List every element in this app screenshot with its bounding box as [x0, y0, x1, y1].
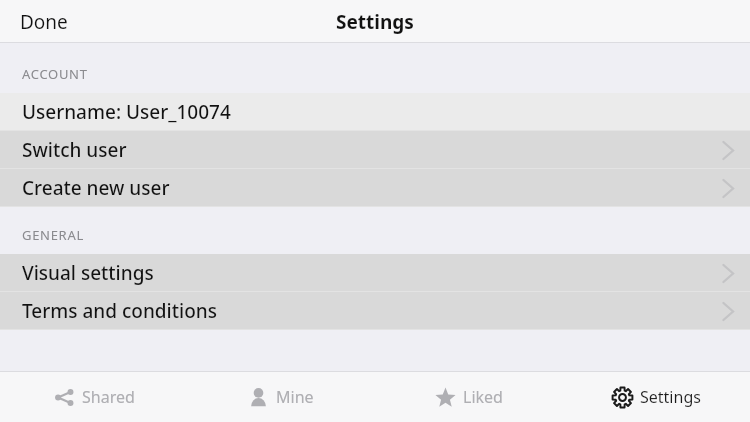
staticText: Settings	[640, 386, 701, 408]
staticText: Switch user	[22, 137, 127, 163]
staticText: Username: User_10074	[22, 99, 231, 125]
staticText: Settings	[336, 9, 414, 35]
button[interactable]: Visual settings	[0, 254, 750, 292]
button[interactable]: Switch user	[0, 131, 750, 169]
button[interactable]: Username: User_10074	[0, 93, 750, 131]
staticText: Visual settings	[22, 260, 154, 286]
staticText: Terms and conditions	[22, 298, 217, 324]
staticText: Create new user	[22, 175, 170, 201]
staticText: Done	[20, 9, 68, 35]
button[interactable]: Shared	[0, 372, 187, 422]
staticText: ACCOUNT	[22, 65, 88, 83]
staticText: Mine	[276, 386, 314, 408]
staticText: Shared	[82, 386, 135, 408]
button[interactable]: Mine	[187, 372, 374, 422]
button[interactable]: Settings	[562, 372, 750, 422]
button[interactable]: Terms and conditions	[0, 292, 750, 330]
button[interactable]: Create new user	[0, 169, 750, 207]
staticText: Liked	[463, 386, 503, 408]
button[interactable]: Liked	[374, 372, 562, 422]
staticText: GENERAL	[22, 226, 84, 244]
button[interactable]: Done	[6, 1, 82, 43]
